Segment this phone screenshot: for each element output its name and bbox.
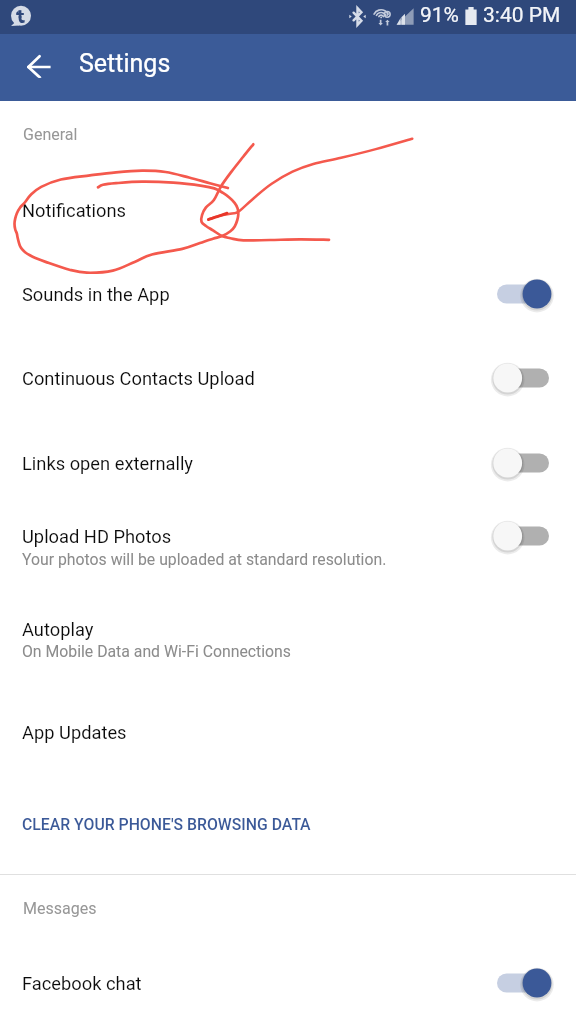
staticText: Messages — [23, 899, 97, 918]
button[interactable]: Sounds in the App — [486, 272, 562, 316]
staticText: 91% — [420, 3, 459, 28]
staticText: Facebook chat — [22, 973, 142, 994]
button[interactable]: Continuous Contacts Upload — [486, 356, 562, 400]
staticText: Autoplay — [22, 619, 94, 640]
button[interactable]: Facebook chat — [486, 961, 562, 1005]
button[interactable] — [0, 496, 576, 580]
staticText: 3:40 PM — [483, 3, 561, 28]
staticText: General — [23, 125, 78, 144]
staticText: On Mobile Data and Wi-Fi Connections — [22, 642, 291, 661]
button[interactable] — [0, 416, 576, 496]
staticText: Sounds in the App — [22, 284, 170, 305]
button[interactable]: Upload HD Photos — [486, 514, 562, 558]
staticText: Notifications — [22, 200, 127, 221]
staticText: Your photos will be uploaded at standard… — [22, 550, 387, 569]
button[interactable] — [0, 686, 576, 766]
staticText: Links open externally — [22, 453, 193, 474]
button[interactable] — [0, 248, 576, 332]
button[interactable]: Links open externally — [486, 441, 562, 485]
button[interactable] — [0, 165, 576, 245]
button[interactable] — [0, 940, 576, 1022]
button[interactable] — [0, 332, 576, 416]
staticText: Settings — [79, 49, 171, 78]
button[interactable]: Back — [17, 33, 62, 78]
button[interactable]: CLEAR YOUR PHONE'S BROWSING DATA — [0, 803, 576, 845]
staticText: CLEAR YOUR PHONE'S BROWSING DATA — [22, 815, 311, 834]
staticText: Upload HD Photos — [22, 526, 172, 547]
staticText: Continuous Contacts Upload — [22, 368, 255, 389]
staticText: App Updates — [22, 722, 127, 743]
button[interactable] — [0, 580, 576, 680]
